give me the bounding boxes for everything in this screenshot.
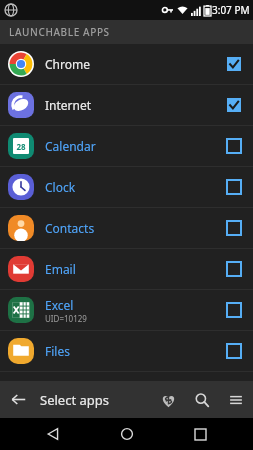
button[interactable]: Recents [180,418,220,450]
button[interactable]: Search [185,383,219,417]
button[interactable] [223,340,245,362]
button[interactable] [223,135,245,157]
staticText: 28 [16,141,26,152]
staticText: LAUNCHABLE APPS [9,25,110,39]
button[interactable] [223,176,245,198]
button[interactable] [223,94,245,116]
button[interactable]: 28 [0,126,253,166]
button[interactable]: Internet [0,85,253,125]
button[interactable]: Contacts [0,208,253,248]
staticText: 3:07 PM [212,3,250,17]
staticText: UID=10129 [45,313,87,324]
staticText: Clock [45,179,76,195]
button[interactable]: Donate [151,383,185,417]
staticText: Excel [45,297,74,313]
button[interactable] [223,299,245,321]
button[interactable]: Back [33,418,73,450]
button[interactable]: Chrome [0,44,253,84]
staticText: Contacts [45,220,95,236]
button[interactable]: Home [107,418,147,450]
staticText: Select apps [40,391,151,409]
button[interactable] [223,53,245,75]
staticText: Files [45,343,70,359]
staticText: Calendar [45,138,96,154]
staticText: Internet [45,97,92,113]
button[interactable] [223,258,245,280]
staticText: Chrome [45,56,90,72]
button[interactable] [223,217,245,239]
button[interactable]: Excel [0,290,253,330]
button[interactable]: Menu [219,383,253,417]
staticText: Email [45,261,76,277]
button[interactable]: Email [0,249,253,289]
button[interactable]: Files [0,331,253,371]
button[interactable]: Clock [0,167,253,207]
button[interactable]: Back [0,381,37,418]
